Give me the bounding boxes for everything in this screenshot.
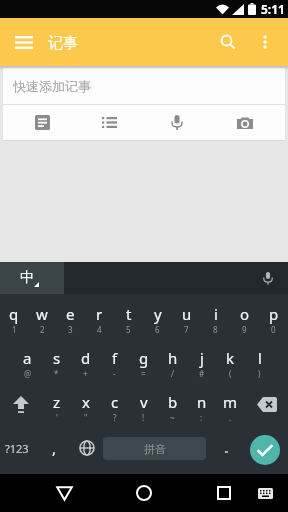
staticText: 3 <box>68 324 73 335</box>
staticText: : <box>200 412 203 423</box>
staticText: 9 <box>242 324 247 335</box>
button[interactable] <box>206 18 250 66</box>
staticText: ( <box>229 368 232 379</box>
staticText: k <box>226 348 235 368</box>
staticText: / <box>171 368 174 379</box>
staticText: m <box>223 392 238 412</box>
staticText: r <box>96 304 103 324</box>
staticText: e <box>66 304 75 324</box>
staticText: q <box>9 304 19 324</box>
button[interactable]: g <box>129 338 158 382</box>
button[interactable]: i <box>201 294 230 338</box>
staticText: . <box>229 412 232 423</box>
staticText: 中 <box>20 269 34 287</box>
button[interactable] <box>74 426 100 470</box>
button[interactable]: v <box>129 382 158 426</box>
button[interactable] <box>211 105 279 140</box>
staticText: g <box>139 348 149 368</box>
button[interactable] <box>143 105 211 140</box>
button[interactable]: ?123 <box>0 426 34 470</box>
button[interactable] <box>200 474 248 512</box>
button[interactable]: d <box>71 338 100 382</box>
button[interactable]: c <box>100 382 129 426</box>
button[interactable] <box>0 18 48 66</box>
staticText: s <box>53 348 61 368</box>
staticText: 6 <box>155 324 160 335</box>
staticText: h <box>168 348 178 368</box>
staticText: 1 <box>12 324 17 335</box>
button[interactable] <box>250 474 280 512</box>
button[interactable] <box>250 18 288 66</box>
staticText: 4 <box>97 324 102 335</box>
button[interactable]: s <box>42 338 71 382</box>
staticText: ~ <box>170 412 175 423</box>
button[interactable]: , <box>34 426 74 470</box>
staticText: c <box>111 392 119 412</box>
button[interactable]: 。 <box>209 426 242 470</box>
staticText: ) <box>258 368 261 379</box>
staticText: a <box>23 348 32 368</box>
button[interactable]: h <box>158 338 187 382</box>
staticText: # <box>199 368 205 379</box>
button[interactable]: k <box>216 338 245 382</box>
button[interactable]: b <box>158 382 187 426</box>
button[interactable] <box>76 105 143 140</box>
staticText: 0 <box>271 324 276 335</box>
button[interactable]: z <box>42 382 71 426</box>
button[interactable]: l <box>245 338 274 382</box>
button[interactable] <box>245 382 288 426</box>
button[interactable]: r <box>85 294 114 338</box>
button[interactable] <box>0 382 42 426</box>
button[interactable] <box>248 262 288 294</box>
button[interactable]: y <box>143 294 172 338</box>
button[interactable]: w <box>28 294 56 338</box>
staticText: 2 <box>40 324 45 335</box>
staticText: " <box>84 412 88 423</box>
staticText: p <box>269 304 279 324</box>
button[interactable]: f <box>100 338 129 382</box>
staticText: = <box>141 368 146 379</box>
button[interactable]: j <box>187 338 216 382</box>
staticText: ? <box>113 412 117 423</box>
button[interactable]: 快速添加记事 <box>3 68 285 104</box>
button[interactable]: t <box>114 294 143 338</box>
staticText: z <box>53 392 61 412</box>
staticText: @ <box>24 368 32 379</box>
button[interactable]: 中 <box>0 262 64 294</box>
staticText: + <box>83 368 88 379</box>
button[interactable]: n <box>187 382 216 426</box>
button[interactable] <box>9 105 76 140</box>
button[interactable]: p <box>259 294 288 338</box>
staticText: 7 <box>184 324 189 335</box>
staticText: t <box>126 304 132 324</box>
staticText: * <box>54 368 59 379</box>
staticText: u <box>182 304 192 324</box>
staticText: d <box>81 348 91 368</box>
staticText: ?123 <box>5 441 29 456</box>
staticText: x <box>82 392 90 412</box>
staticText: w <box>36 304 48 324</box>
button[interactable]: a <box>13 338 42 382</box>
button[interactable]: x <box>71 382 100 426</box>
button[interactable]: u <box>172 294 201 338</box>
staticText: i <box>214 304 218 324</box>
button[interactable]: e <box>56 294 85 338</box>
button[interactable] <box>40 474 88 512</box>
staticText: j <box>200 348 204 368</box>
staticText: y <box>154 304 162 324</box>
button[interactable]: o <box>230 294 259 338</box>
staticText: 5 <box>126 324 131 335</box>
staticText: 快速添加记事 <box>13 78 91 94</box>
button[interactable]: m <box>216 382 245 426</box>
staticText: - <box>113 368 116 379</box>
button[interactable]: 拼音 <box>103 437 206 460</box>
button[interactable] <box>242 426 288 470</box>
button[interactable]: q <box>0 294 28 338</box>
staticText: 。 <box>224 441 235 455</box>
staticText: ' <box>56 412 58 423</box>
staticText: n <box>197 392 207 412</box>
button[interactable] <box>120 474 168 512</box>
staticText: b <box>168 392 178 412</box>
staticText: 5:11 <box>261 1 285 17</box>
staticText: v <box>140 392 148 412</box>
